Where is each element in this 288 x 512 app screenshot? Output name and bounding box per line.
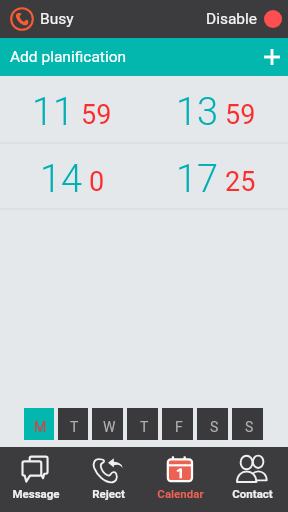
button[interactable]: Add planification	[0, 38, 288, 76]
button[interactable]: S	[197, 408, 228, 440]
staticText: T	[140, 419, 149, 435]
button[interactable]: Message	[0, 447, 72, 512]
button[interactable]: Reject	[72, 447, 144, 512]
staticText: S	[245, 419, 254, 435]
button[interactable]: 14	[0, 144, 144, 208]
staticText: Contact	[232, 487, 273, 500]
button[interactable]: W	[92, 408, 123, 440]
staticText: 0	[89, 166, 105, 198]
staticText: 13	[176, 90, 219, 135]
staticText: 59	[225, 99, 256, 131]
staticText: Add planification	[10, 48, 127, 66]
staticText: Calendar	[157, 487, 204, 500]
staticText: T	[70, 419, 79, 435]
button[interactable]: 17	[144, 144, 288, 208]
staticText: 11	[32, 90, 75, 135]
button[interactable]: F	[162, 408, 193, 440]
staticText: Message	[12, 487, 60, 500]
button[interactable]: T	[127, 408, 158, 440]
staticText: F	[175, 419, 183, 435]
button[interactable]: 11	[0, 76, 144, 142]
button[interactable]: Calendar	[144, 447, 216, 512]
staticText: Busy	[40, 10, 74, 28]
button[interactable]: Busy status	[10, 7, 34, 31]
button[interactable]: S	[232, 408, 263, 440]
staticText: M	[34, 419, 47, 435]
staticText: Disable	[206, 10, 258, 28]
staticText: Reject	[92, 487, 125, 500]
staticText: W	[103, 419, 116, 435]
button[interactable]: 13	[144, 76, 288, 142]
button[interactable]: Contact	[216, 447, 288, 512]
staticText: 14	[40, 157, 83, 202]
staticText: 17	[176, 157, 219, 202]
staticText: 59	[81, 99, 112, 131]
button[interactable]: Disable	[200, 10, 288, 28]
staticText: S	[210, 419, 219, 435]
button[interactable]: T	[58, 408, 88, 440]
button[interactable]: M	[24, 408, 54, 440]
staticText: 25	[225, 166, 256, 198]
